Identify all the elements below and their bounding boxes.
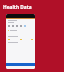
button[interactable]: Health Data — [3, 4, 32, 11]
